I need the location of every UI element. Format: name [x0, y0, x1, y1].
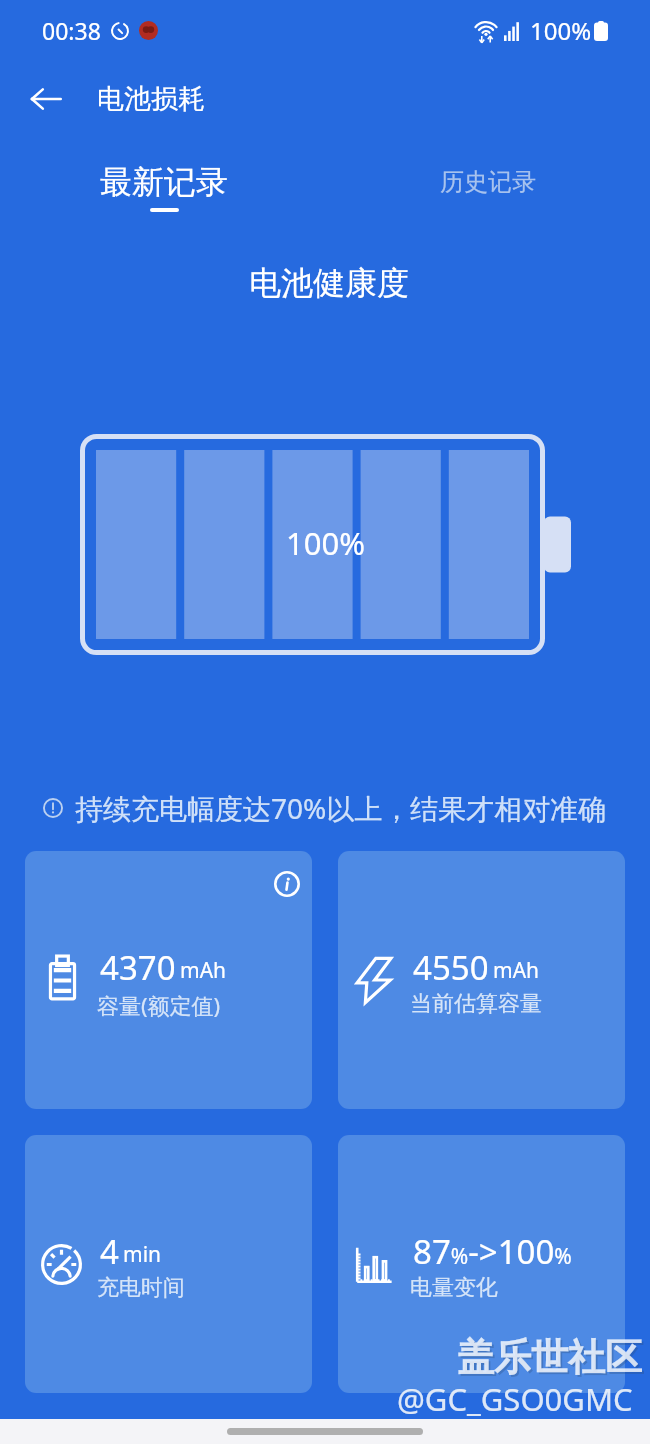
staticText: min: [123, 1240, 162, 1269]
button[interactable]: 4: [25, 1135, 312, 1393]
button[interactable]: Back: [22, 75, 70, 123]
staticText: 当前估算容量: [410, 990, 542, 1018]
staticText: 4550: [413, 945, 489, 990]
button[interactable]: 历史记录: [388, 136, 588, 226]
staticText: mAh: [180, 956, 227, 985]
button[interactable]: 最新记录: [64, 136, 264, 226]
button[interactable]: Info: [271, 868, 303, 900]
staticText: 100%: [286, 522, 365, 564]
button[interactable]: Info: [25, 851, 312, 1109]
staticText: 4370: [100, 945, 176, 990]
staticText: 持续充电幅度达70%以上，结果才相对准确: [75, 789, 607, 827]
staticText: 电池健康度: [4, 263, 650, 303]
staticText: @GC_GSO0GMC: [397, 1378, 633, 1420]
staticText: 4: [100, 1229, 119, 1274]
staticText: 00:38: [42, 15, 101, 46]
staticText: 最新记录: [100, 162, 228, 202]
staticText: 容量(额定值): [97, 990, 221, 1020]
button[interactable]: 87%->100%: [338, 1135, 625, 1393]
staticText: 充电时间: [97, 1274, 185, 1302]
staticText: 100%: [530, 14, 592, 47]
staticText: 盖乐世社区: [457, 1334, 642, 1381]
staticText: 电量变化: [410, 1274, 498, 1302]
staticText: 87%->100%: [413, 1229, 572, 1274]
staticText: 历史记录: [440, 167, 536, 197]
button[interactable]: 4550: [338, 851, 625, 1109]
staticText: 电池损耗: [97, 82, 205, 116]
staticText: 盖乐世社区: [459, 1336, 644, 1383]
staticText: mAh: [493, 956, 540, 985]
